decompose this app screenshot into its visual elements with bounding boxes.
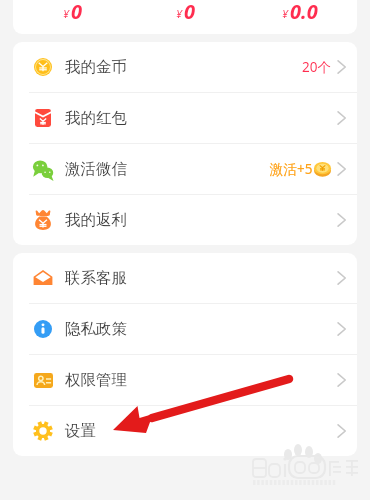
button[interactable]: 我的红包 <box>13 93 357 143</box>
staticText: 激活+5 <box>270 160 313 178</box>
staticText: 0 <box>184 0 196 25</box>
staticText: 权限管理 <box>65 370 127 390</box>
button[interactable]: 权限管理 <box>13 355 357 405</box>
staticText: ¥ <box>282 6 289 21</box>
staticText: ¥ <box>63 6 70 21</box>
staticText: 隐私政策 <box>65 319 127 339</box>
staticText: 联系客服 <box>65 268 127 288</box>
button[interactable]: 设置 <box>13 406 357 456</box>
staticText: ¥ <box>176 6 183 21</box>
staticText: 0.0 <box>290 0 318 25</box>
button[interactable]: 激活微信 <box>13 144 357 194</box>
button[interactable]: 隐私政策 <box>13 304 357 354</box>
staticText: 0 <box>71 0 83 25</box>
button[interactable]: 我的金币 <box>13 42 357 92</box>
staticText: 激活微信 <box>65 159 127 179</box>
button[interactable]: 我的返利 <box>13 195 357 245</box>
staticText: 我的返利 <box>65 210 127 230</box>
staticText: 我的金币 <box>65 57 127 77</box>
staticText: 设置 <box>65 421 96 441</box>
button[interactable]: 联系客服 <box>13 253 357 303</box>
staticText: 我的红包 <box>65 108 127 128</box>
staticText: 20个 <box>302 58 331 76</box>
